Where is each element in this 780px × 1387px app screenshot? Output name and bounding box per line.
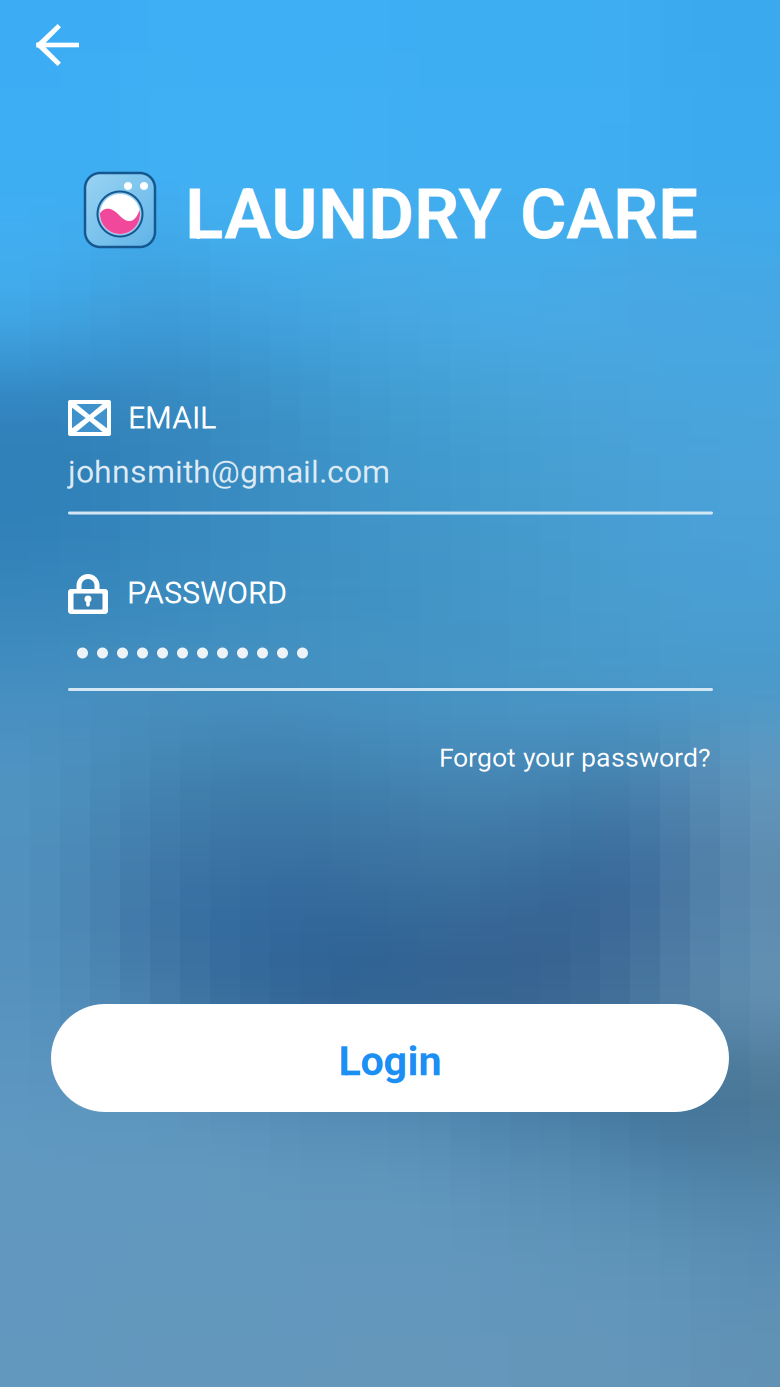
staticText: Forgot your password? (439, 742, 711, 773)
staticText: Login (338, 1037, 441, 1085)
staticText: johnsmith@gmail.com (68, 453, 390, 490)
button[interactable]: Back (19, 7, 95, 83)
staticText: EMAIL (128, 400, 217, 436)
staticText: LAUNDRY CARE (185, 173, 698, 256)
staticText: PASSWORD (127, 575, 287, 611)
button[interactable]: Forgot your password? (429, 734, 721, 781)
button[interactable]: Login (51, 1004, 729, 1112)
